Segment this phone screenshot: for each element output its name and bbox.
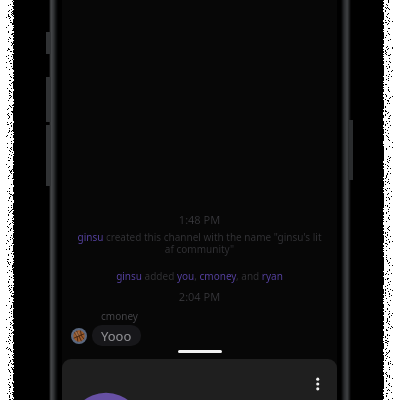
staticText: 2:04 PM	[62, 289, 337, 304]
staticText: ginsu added you, cmoney, and ryan	[62, 269, 337, 283]
button[interactable]: Yooo	[92, 325, 141, 346]
staticText: ginsu created this channel with the name…	[62, 230, 337, 256]
staticText: Yooo	[101, 327, 132, 345]
staticText: 1:48 PM	[62, 212, 337, 227]
button[interactable]: More options	[310, 371, 330, 391]
staticText: cmoney	[101, 309, 138, 323]
